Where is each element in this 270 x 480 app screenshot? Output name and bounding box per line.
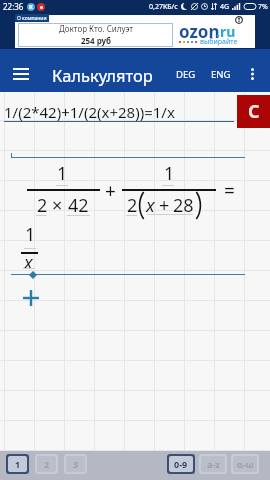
staticText: 1 [164,161,175,186]
staticText: ENG [211,68,231,81]
staticText: 28 [173,193,194,218]
button[interactable]: 0-9 [169,456,193,472]
staticText: 7% [258,2,268,12]
button[interactable]: 3 [66,456,85,472]
button[interactable]: DEG [172,60,200,89]
staticText: 1/(2*42)+1/(2(x+28))=1/x [4,102,175,122]
staticText: .ru [216,22,236,41]
staticText: 42 [68,193,89,218]
button[interactable]: a-z [201,456,225,472]
staticText: О компании [17,15,47,22]
staticText: 254 руб [51,35,141,46]
button[interactable]: Add equation [23,290,39,306]
staticText: 2 [37,193,48,218]
staticText: a-z [207,458,220,470]
staticText: K [29,3,33,11]
staticText: 1 [25,222,36,247]
staticText: 3 [73,458,79,470]
staticText: Доктор Кто. Силуэт [51,23,141,34]
staticText: = [224,178,235,204]
staticText: + [105,178,116,204]
staticText: x [146,193,155,218]
staticText: 1 [15,458,21,470]
button[interactable]: ENG [207,60,235,89]
staticText: 2 [44,458,50,470]
staticText: × [52,193,63,218]
staticText: ozon [179,20,220,43]
staticText: 22:36 [3,1,24,12]
staticText: 0-9 [174,458,188,470]
button[interactable]: C [237,95,270,128]
staticText: 4G [220,2,230,12]
button[interactable]: More options [241,49,263,92]
staticText: DEG [176,68,196,81]
staticText: Калькулятор [52,64,153,86]
staticText: x [24,250,33,275]
button[interactable]: α-ω [233,456,257,472]
button[interactable]: 2 [37,456,56,472]
staticText: 2 [127,193,138,218]
button[interactable]: О компании [17,14,47,22]
staticText: 1 [57,161,68,186]
button[interactable]: Menu [5,49,37,92]
staticText: + [159,193,170,218]
button[interactable]: 1 [8,456,27,472]
staticText: 0,27КБ/c [149,2,178,12]
staticText: выбирайте [200,37,238,47]
staticText: α-ω [237,458,254,470]
staticText: C [248,99,260,124]
